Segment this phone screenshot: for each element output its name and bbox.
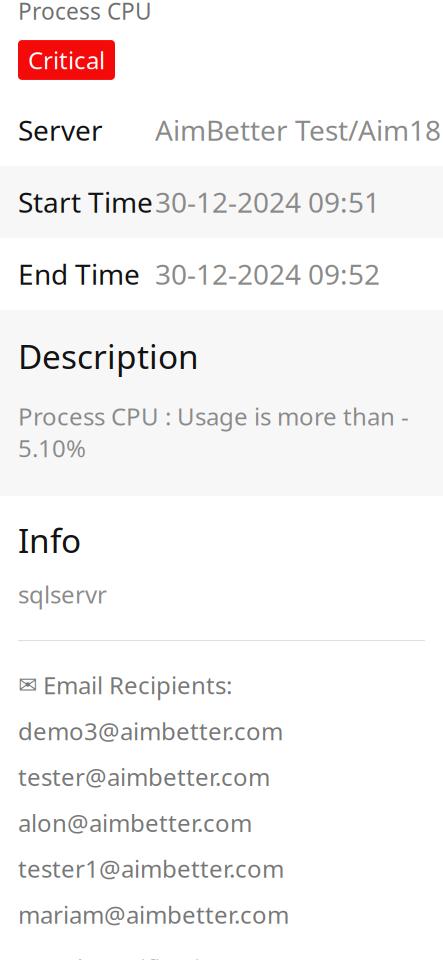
staticText: tester@aimbetter.com [18,761,270,793]
staticText: Email Recipients: [43,669,232,701]
staticText: Critical [28,44,105,76]
staticText: mariam@aimbetter.com [18,898,289,930]
staticText: Info [18,518,81,562]
staticText: demo3@aimbetter.com [18,715,283,747]
staticText: End Time [18,255,140,292]
staticText: Process CPU : Usage is more than - 5.10% [18,400,409,464]
staticText: Process CPU [18,0,152,26]
staticText: Description [18,334,199,378]
staticText: alon@aimbetter.com [18,807,252,839]
staticText: sqlservr [18,578,107,610]
staticText: ✉ [18,672,37,698]
staticText: 30-12-2024 09:52 [155,255,380,292]
staticText: tester1@aimbetter.com [18,853,284,884]
staticText: Push Notifications: [36,952,247,960]
staticText: Server [18,111,103,148]
staticText: Start Time [18,183,153,220]
staticText: AimBetter Test/Aim18 [155,111,441,148]
staticText: 30-12-2024 09:51 [155,183,380,220]
